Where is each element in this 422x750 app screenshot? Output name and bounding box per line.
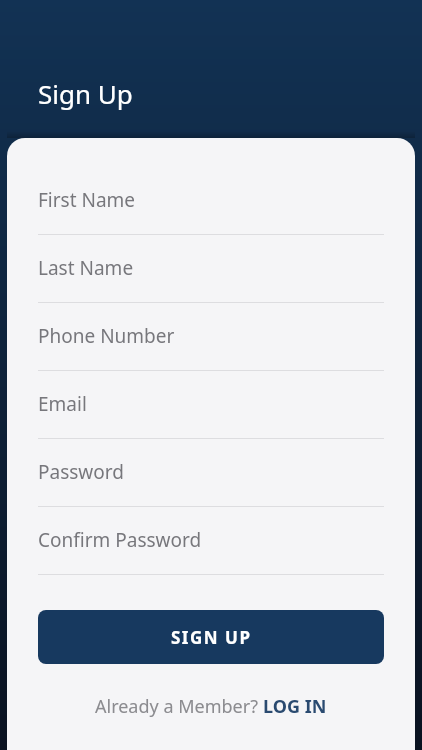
staticText: Already a Member? xyxy=(95,694,263,719)
staticText: Last Name xyxy=(38,255,134,281)
button[interactable]: Last Name xyxy=(38,240,384,308)
staticText: Password xyxy=(38,459,124,485)
button[interactable]: Phone Number xyxy=(38,308,384,376)
staticText: Email xyxy=(38,391,87,417)
button[interactable]: SIGN UP xyxy=(38,610,384,664)
button[interactable]: Email xyxy=(38,376,384,444)
staticText: Phone Number xyxy=(38,323,175,349)
staticText: Confirm Password xyxy=(38,527,202,553)
button[interactable]: Confirm Password xyxy=(38,512,384,580)
staticText: SIGN UP xyxy=(171,626,252,649)
button[interactable]: Already a Member? xyxy=(95,694,327,719)
staticText: First Name xyxy=(38,187,136,213)
staticText: Sign Up xyxy=(38,76,133,111)
button[interactable]: Password xyxy=(38,444,384,512)
button[interactable]: First Name xyxy=(38,172,384,240)
staticText: LOG IN xyxy=(263,694,327,719)
